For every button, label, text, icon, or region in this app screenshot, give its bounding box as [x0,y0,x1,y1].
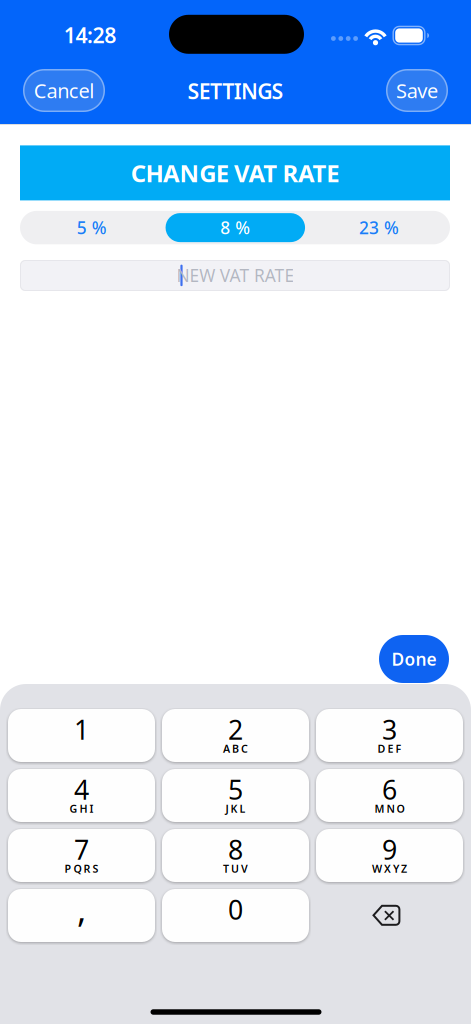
staticText: NEW VAT RATE [177,264,294,287]
button[interactable]: 7 [8,829,155,882]
staticText: SETTINGS [187,77,284,105]
staticText: Done [391,647,436,670]
staticText: ABC [223,741,248,756]
staticText: Cancel [34,77,94,104]
staticText: 4 [74,772,89,807]
button[interactable]: Save [386,69,448,112]
button[interactable]: 3 [316,709,463,762]
button[interactable]: 23 % [307,211,450,244]
staticText: Save [396,77,438,104]
staticText: 8 % [220,216,250,239]
button[interactable]: Done [379,635,449,683]
staticText: GHI [69,801,93,816]
staticText: CHANGE VAT RATE [131,157,339,189]
staticText: DEF [377,741,401,756]
button[interactable]: 5 [162,769,309,822]
staticText: , [77,886,86,932]
staticText: JKL [225,801,245,816]
button[interactable]: 2 [162,709,309,762]
staticText: PQRS [64,861,98,876]
staticText: WXYZ [372,861,407,876]
staticText: 7 [74,832,89,867]
button[interactable]: 1 [8,709,155,762]
staticText: 8 [228,832,243,867]
button[interactable]: 9 [316,829,463,882]
staticText: 6 [382,772,397,807]
staticText: 1 [74,712,89,747]
button[interactable]: 5 % [20,211,163,244]
button[interactable] [313,889,460,942]
button[interactable]: 6 [316,769,463,822]
button[interactable]: 4 [8,769,155,822]
button[interactable]: 0 [162,889,309,942]
button[interactable] [20,260,450,291]
staticText: TUV [223,861,248,876]
staticText: 5 [228,772,243,807]
button[interactable]: 8 % [166,213,305,242]
staticText: 2 [228,712,243,747]
staticText: 3 [382,712,397,747]
button[interactable]: 8 [162,829,309,882]
staticText: 23 % [359,216,399,239]
staticText: 5 % [77,216,107,239]
button[interactable]: Cancel [23,69,105,112]
button[interactable]: , [8,889,155,942]
staticText: 0 [228,892,243,927]
staticText: 9 [382,832,397,867]
staticText: MNO [374,801,404,816]
staticText: 14:28 [64,21,116,49]
